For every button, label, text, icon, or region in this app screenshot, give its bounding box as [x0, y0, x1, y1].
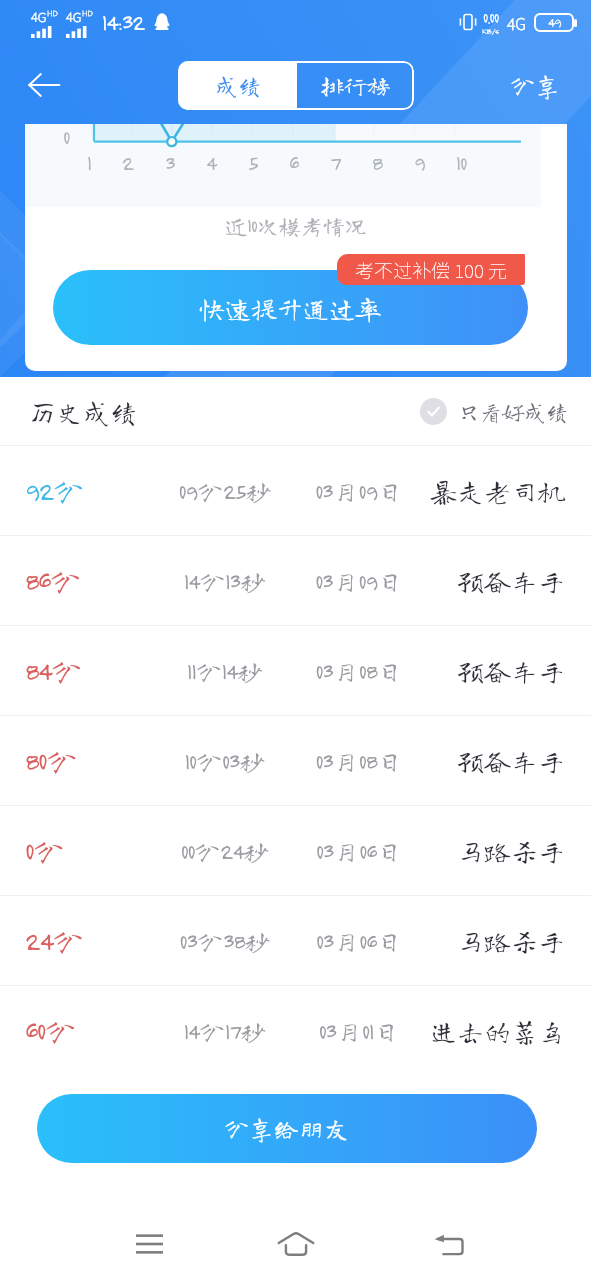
button[interactable]: 分享 [496, 65, 591, 106]
staticText: 4 [206, 151, 217, 175]
button[interactable]: 60分 [0, 986, 591, 1075]
staticText: 1 [87, 151, 91, 175]
staticText: 14分17秒 [155, 1018, 295, 1044]
staticText: 7 [330, 151, 341, 175]
staticText: 马路杀手 [423, 837, 565, 864]
staticText: 10 [456, 151, 467, 175]
staticText: 03月09日 [295, 478, 423, 504]
staticText: 成绩 [215, 74, 261, 97]
staticText: 84分 [25, 655, 155, 686]
staticText: 10分03秒 [155, 748, 295, 774]
staticText: 5 [248, 151, 258, 175]
button[interactable]: 80分 [0, 716, 591, 805]
staticText: 24分 [25, 925, 155, 956]
staticText: 进击的菜鸟 [423, 1017, 565, 1044]
staticText: 03月06日 [295, 928, 423, 954]
staticText: 只看好成绩 [458, 401, 569, 423]
staticText: 4G [507, 11, 526, 34]
staticText: 00分24秒 [155, 838, 295, 864]
button[interactable]: 快速提升通过率 [53, 270, 528, 345]
staticText: 03月09日 [295, 568, 423, 594]
staticText: 2 [122, 151, 134, 175]
button[interactable]: 分享给朋友 [37, 1094, 537, 1163]
staticText: 03月06日 [295, 838, 423, 864]
staticText: 92分 [25, 475, 155, 506]
staticText: 考不过补偿 100 元 [355, 256, 508, 284]
staticText: 快速提升通过率 [199, 295, 382, 321]
staticText: HD [47, 7, 58, 19]
staticText: 6 [289, 151, 299, 175]
staticText: 03分38秒 [155, 928, 295, 954]
staticText: 49 [548, 15, 561, 30]
staticText: 预备车手 [423, 747, 565, 774]
staticText: 分享给朋友 [224, 1116, 350, 1141]
button[interactable]: Home [222, 1208, 370, 1280]
staticText: 80分 [25, 745, 155, 776]
staticText: 暴走老司机 [423, 477, 565, 504]
staticText: 4G [66, 7, 82, 26]
staticText: KB/s [482, 26, 499, 36]
button[interactable]: 92分 [0, 446, 591, 535]
button[interactable]: 只看好成绩 [412, 392, 591, 431]
staticText: 09分25秒 [155, 478, 295, 504]
staticText: 03月08日 [295, 748, 423, 774]
staticText: 9 [414, 151, 425, 175]
button[interactable]: Back [370, 1208, 528, 1280]
staticText: 60分 [25, 1015, 155, 1046]
button[interactable]: Recent apps [76, 1208, 222, 1280]
button[interactable]: 0分 [0, 806, 591, 895]
button[interactable]: 86分 [0, 536, 591, 625]
staticText: 马路杀手 [423, 927, 565, 954]
staticText: 0分 [25, 835, 155, 866]
staticText: 近10次模考情况 [25, 215, 567, 237]
staticText: 0 [63, 125, 70, 149]
staticText: 11分14秒 [155, 658, 295, 684]
staticText: 8 [372, 151, 383, 175]
staticText: 14:32 [102, 9, 145, 35]
staticText: 4G [31, 7, 47, 26]
button[interactable]: 84分 [0, 626, 591, 715]
staticText: 03月01日 [295, 1018, 423, 1044]
staticText: 14分13秒 [155, 568, 295, 594]
staticText: 预备车手 [423, 657, 565, 684]
button[interactable]: Back [20, 61, 68, 109]
button[interactable]: 24分 [0, 896, 591, 985]
button[interactable]: 排行榜 [297, 61, 414, 110]
staticText: HD [82, 7, 93, 19]
staticText: 3 [165, 151, 175, 175]
staticText: 排行榜 [321, 74, 390, 97]
staticText: 历史成绩 [29, 398, 137, 425]
button[interactable]: 成绩 [178, 61, 297, 110]
staticText: 预备车手 [423, 567, 565, 594]
staticText: 0.00 [483, 9, 499, 26]
staticText: 03月08日 [295, 658, 423, 684]
staticText: 86分 [25, 565, 155, 596]
staticText: 分享 [510, 73, 561, 98]
